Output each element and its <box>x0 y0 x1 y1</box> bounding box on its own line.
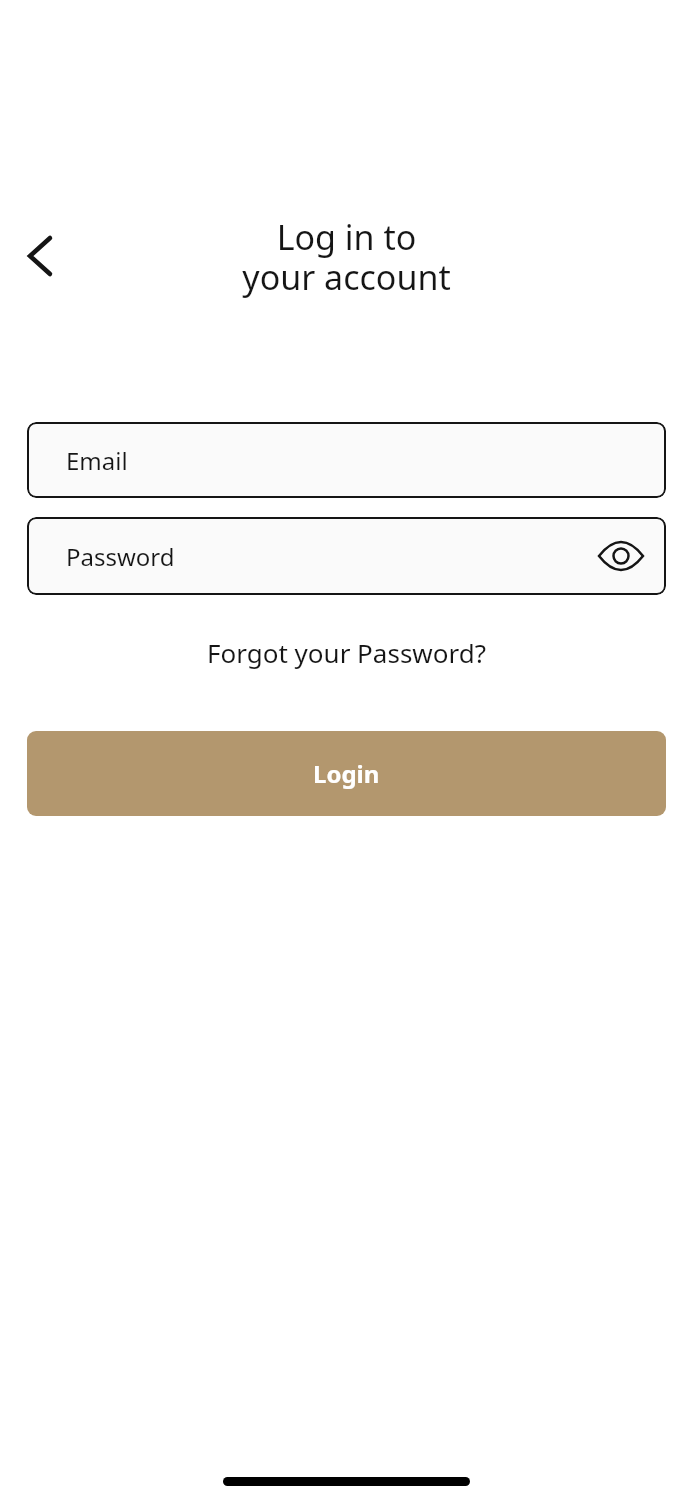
staticText: Forgot your Password? <box>207 635 487 670</box>
button[interactable] <box>16 232 64 280</box>
button[interactable]: Forgot your Password? <box>195 629 499 676</box>
button[interactable]: Login <box>27 731 666 816</box>
staticText: Email <box>66 444 128 477</box>
staticText: Login <box>313 757 380 790</box>
button[interactable]: Email <box>27 422 666 498</box>
staticText: Password <box>66 540 175 573</box>
button[interactable]: Password <box>27 517 666 595</box>
staticText: Log in to your account <box>0 214 693 300</box>
button[interactable] <box>597 532 645 580</box>
